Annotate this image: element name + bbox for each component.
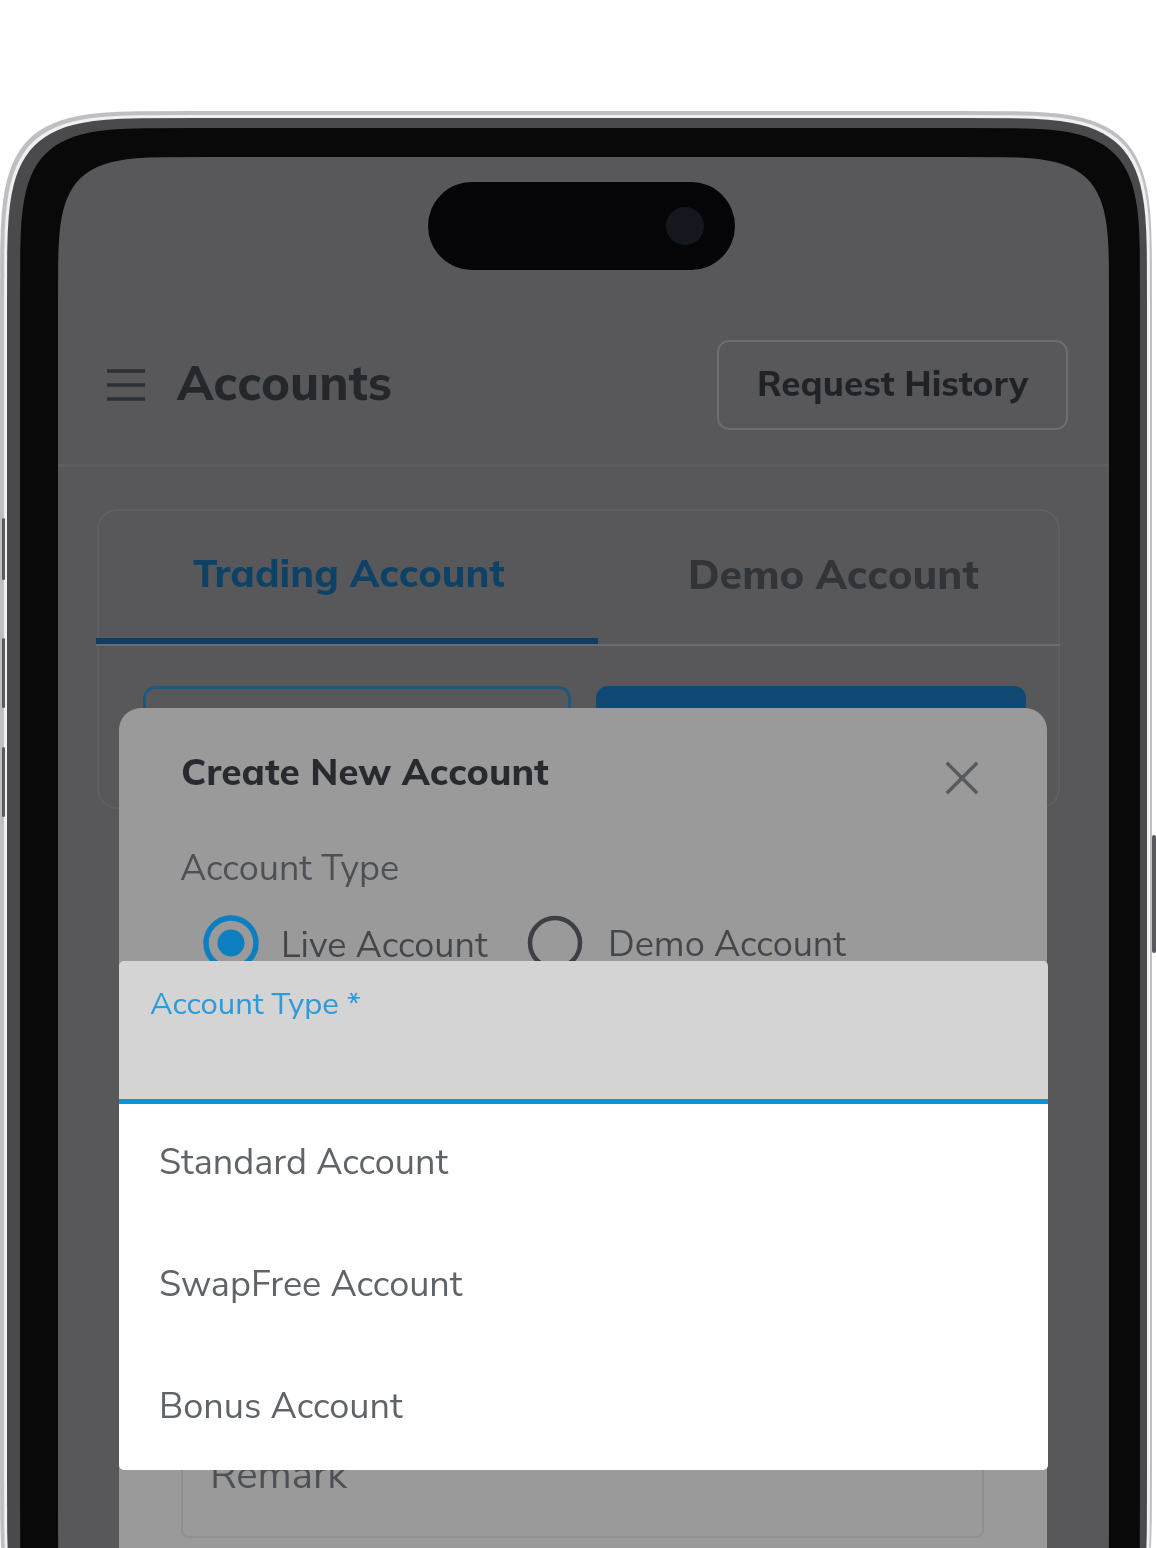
staticText: Accounts <box>177 352 392 412</box>
staticText: Request History <box>757 361 1029 405</box>
staticText: SwapFree Account <box>159 1260 463 1309</box>
button[interactable] <box>143 686 571 778</box>
staticText: Bonus Account <box>159 1382 403 1431</box>
button[interactable]: Open navigation menu <box>107 369 147 401</box>
staticText: Trading Account <box>193 548 505 597</box>
staticText: Account Type * <box>150 983 361 1025</box>
staticText: Demo Account <box>608 920 846 969</box>
button[interactable] <box>596 686 1026 778</box>
button[interactable] <box>96 509 598 646</box>
button[interactable] <box>204 916 494 972</box>
staticText: Demo Account <box>688 548 979 599</box>
button[interactable]: Close dialog <box>930 746 994 810</box>
staticText: Live Account <box>281 921 488 970</box>
button[interactable] <box>717 340 1068 430</box>
button[interactable] <box>119 961 1048 1099</box>
staticText: Standard Account <box>159 1138 449 1187</box>
staticText: Account Type <box>180 844 400 893</box>
staticText: Remark <box>210 1448 348 1503</box>
button[interactable]: Standard Account <box>119 1104 1048 1226</box>
button[interactable]: SwapFree Account <box>119 1226 1048 1348</box>
staticText: Create New Account <box>181 748 549 794</box>
button[interactable] <box>528 916 848 972</box>
button[interactable]: Bonus Account <box>119 1348 1048 1470</box>
button[interactable] <box>598 509 1060 646</box>
